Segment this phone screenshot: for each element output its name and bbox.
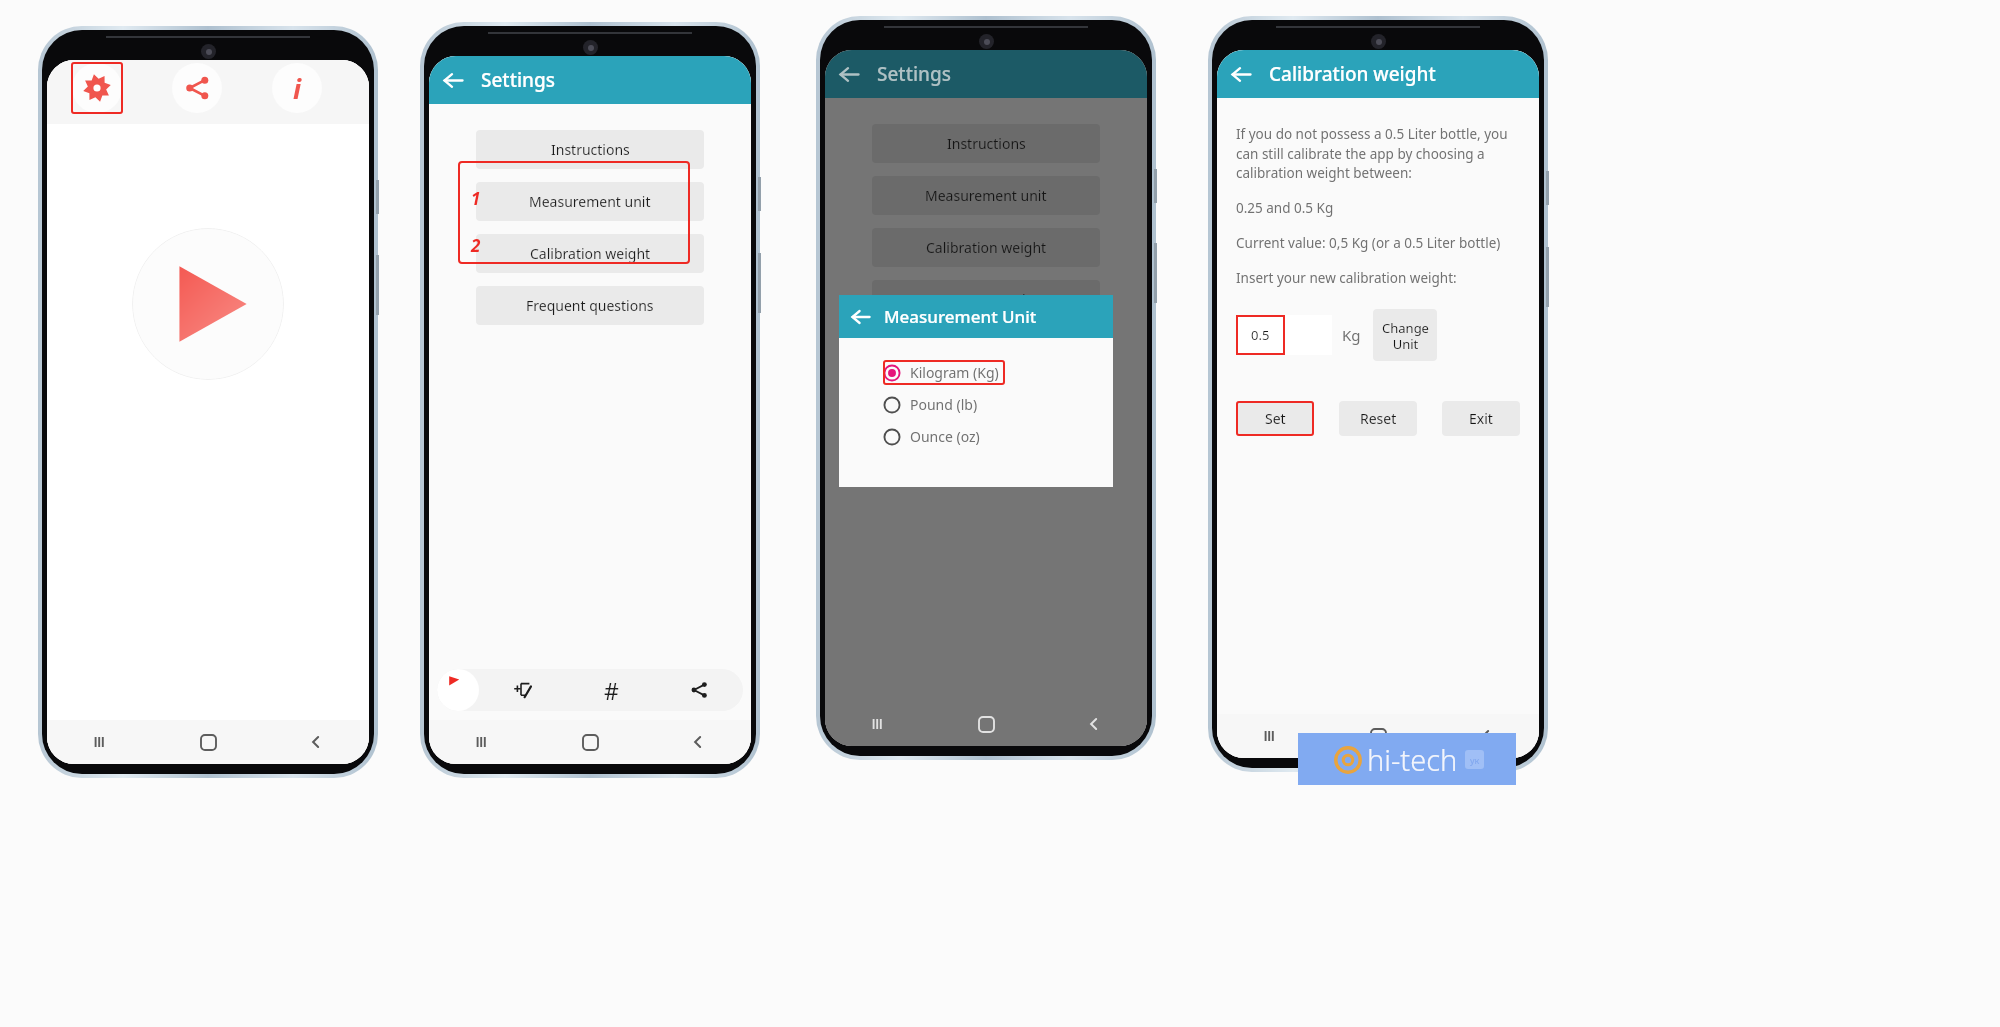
button[interactable]: Home: [155, 720, 262, 764]
button[interactable]: Tags: [567, 669, 655, 711]
staticText: ук: [1470, 754, 1480, 766]
button[interactable]: Recent apps: [47, 720, 155, 764]
staticText: Settings: [877, 61, 951, 87]
staticText: #: [604, 675, 619, 706]
button[interactable]: Record: [437, 669, 479, 711]
staticText: Calibration weight: [1269, 61, 1436, 87]
button[interactable]: Home: [537, 720, 644, 764]
button[interactable]: Home: [1325, 714, 1432, 758]
staticText: Pound (lb): [910, 395, 978, 414]
button[interactable]: Calibration weight: [872, 228, 1100, 267]
button[interactable]: Settings: [69, 60, 125, 116]
button[interactable]: Measurement unit: [872, 176, 1100, 215]
staticText: Settings: [481, 67, 555, 93]
button[interactable]: Exit: [1442, 401, 1520, 436]
button[interactable]: Back: [429, 56, 477, 104]
button[interactable]: Recent apps: [1217, 714, 1325, 758]
button[interactable]: Information: [269, 60, 325, 116]
staticText: Change Unit: [1382, 319, 1429, 352]
button[interactable]: Edit: [479, 669, 567, 711]
button[interactable]: Play: [132, 228, 284, 380]
staticText: If you do not possess a 0.5 Liter bottle…: [1236, 125, 1520, 182]
staticText: Current value: 0,5 Kg (or a 0.5 Liter bo…: [1236, 234, 1501, 252]
staticText: hi-tech: [1367, 740, 1458, 779]
button[interactable]: Back: [825, 50, 873, 98]
staticText: Calibration weight: [530, 244, 651, 263]
staticText: Insert your new calibration weight:: [1236, 269, 1457, 287]
staticText: Reset: [1360, 409, 1397, 428]
staticText: i: [293, 70, 302, 107]
button[interactable]: Weight input: [1236, 315, 1332, 355]
staticText: Instructions: [551, 140, 630, 159]
staticText: Kg: [1342, 325, 1361, 345]
button[interactable]: Recent apps: [825, 702, 933, 746]
staticText: Kilogram (Kg): [910, 363, 999, 382]
button[interactable]: Back: [1432, 714, 1539, 758]
button[interactable]: Share: [169, 60, 225, 116]
staticText: 0.25 and 0.5 Kg: [1236, 199, 1334, 217]
button[interactable]: Kilogram (Kg): [883, 360, 1005, 385]
button[interactable]: Instructions: [476, 130, 704, 169]
staticText: Frequent questions: [526, 296, 654, 315]
button[interactable]: Change Unit: [1373, 309, 1437, 361]
staticText: Measurement Unit: [884, 305, 1037, 328]
button[interactable]: Calibration weight: [476, 234, 704, 273]
staticText: Ounce (oz): [910, 427, 980, 446]
button[interactable]: Pound (lb): [883, 392, 984, 417]
staticText: 2: [471, 234, 481, 257]
button[interactable]: Reset: [1339, 401, 1417, 436]
button[interactable]: Back: [839, 295, 882, 338]
button[interactable]: Back: [262, 720, 369, 764]
staticText: Exit: [1469, 409, 1493, 428]
button[interactable]: Frequent questions: [872, 280, 1100, 319]
staticText: 0.5: [1251, 326, 1270, 344]
button[interactable]: Share: [655, 669, 743, 711]
staticText: Instructions: [947, 134, 1026, 153]
button[interactable]: Ounce (oz): [883, 424, 986, 449]
staticText: 1: [471, 187, 481, 210]
staticText: Measurement unit: [925, 186, 1047, 205]
button[interactable]: Instructions: [872, 124, 1100, 163]
button[interactable]: Measurement unit: [476, 182, 704, 221]
button[interactable]: Set: [1236, 401, 1314, 436]
button[interactable]: Home: [933, 702, 1040, 746]
button[interactable]: Back: [1217, 50, 1265, 98]
button[interactable]: Back: [1040, 702, 1147, 746]
button[interactable]: Back: [644, 720, 751, 764]
button[interactable]: Recent apps: [429, 720, 537, 764]
staticText: Calibration weight: [926, 238, 1047, 257]
staticText: Frequent questions: [922, 290, 1050, 309]
button[interactable]: Frequent questions: [476, 286, 704, 325]
staticText: Measurement unit: [529, 192, 651, 211]
staticText: Set: [1265, 409, 1286, 428]
